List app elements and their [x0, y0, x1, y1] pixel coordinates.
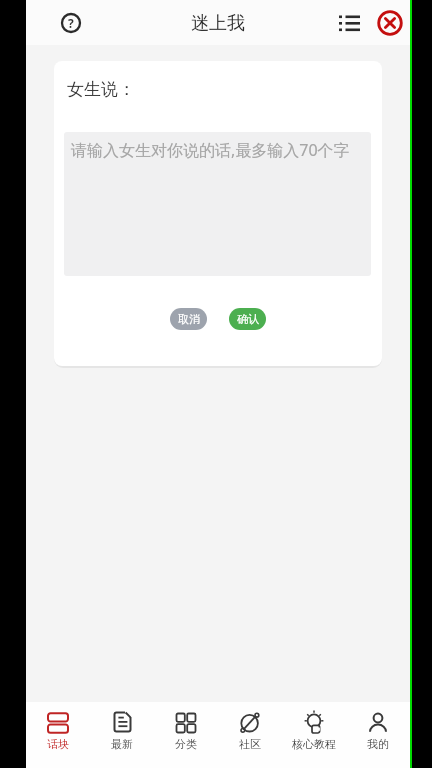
staticText: 请输入女生对你说的话,最多输入70个字 — [71, 139, 350, 161]
button[interactable] — [377, 10, 403, 36]
staticText: 社区 — [239, 737, 261, 751]
button[interactable]: 请输入女生对你说的话,最多输入70个字 — [64, 132, 371, 276]
staticText: 迷上我 — [191, 12, 245, 35]
button[interactable]: 确认 — [229, 308, 266, 330]
staticText: 取消 — [178, 312, 200, 326]
staticText: 分类 — [175, 737, 197, 751]
button[interactable]: 取消 — [170, 308, 207, 330]
staticText: 女生说： — [67, 79, 135, 100]
button[interactable]: 话块 — [26, 702, 90, 768]
button[interactable]: ? — [61, 13, 81, 33]
staticText: 最新 — [111, 737, 133, 751]
button[interactable]: 社区 — [218, 702, 282, 768]
staticText: 我的 — [367, 737, 389, 751]
button[interactable]: 分类 — [154, 702, 218, 768]
button[interactable] — [339, 12, 361, 34]
staticText: 话块 — [47, 737, 69, 751]
button[interactable]: 最新 — [90, 702, 154, 768]
staticText: 确认 — [237, 312, 259, 326]
button[interactable]: 我的 — [346, 702, 410, 768]
staticText: 核心教程 — [292, 737, 336, 751]
button[interactable]: 核心教程 — [282, 702, 346, 768]
staticText: ? — [68, 15, 74, 31]
